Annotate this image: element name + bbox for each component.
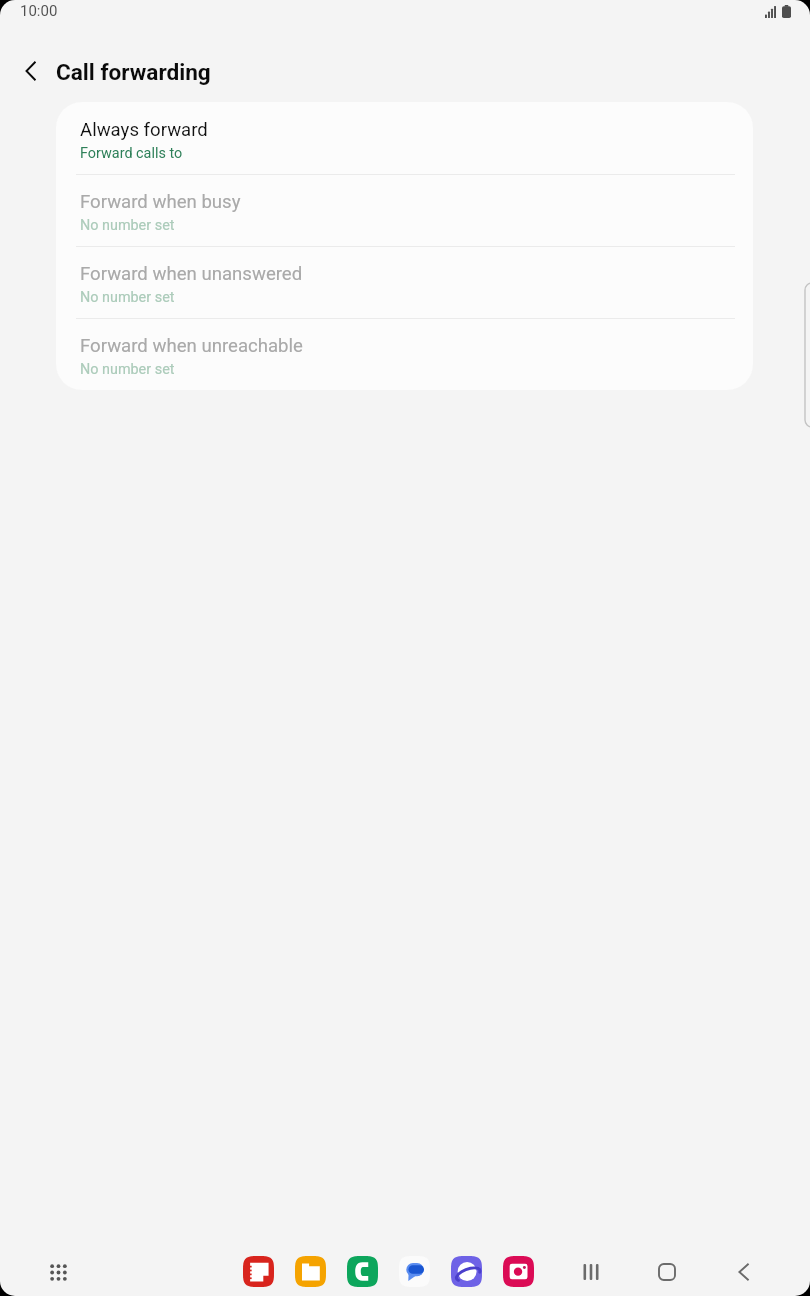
staticText: No number set bbox=[80, 217, 175, 234]
button[interactable]: Forward when unreachable bbox=[56, 318, 753, 390]
staticText: Forward calls to bbox=[80, 145, 183, 162]
button[interactable]: Samsung Notes bbox=[243, 1256, 274, 1287]
button[interactable]: Internet bbox=[451, 1256, 482, 1287]
button[interactable]: Recents bbox=[569, 1250, 613, 1294]
staticText: Forward when unanswered bbox=[80, 263, 303, 285]
button[interactable]: Apps bbox=[36, 1250, 81, 1295]
staticText: No number set bbox=[80, 289, 175, 306]
button[interactable]: Always forward bbox=[56, 102, 753, 174]
button[interactable]: Forward when busy bbox=[56, 174, 753, 246]
staticText: Always forward bbox=[80, 119, 208, 141]
button[interactable]: Home bbox=[645, 1250, 689, 1294]
staticText: 10:00 bbox=[20, 2, 58, 20]
button[interactable]: Phone bbox=[347, 1256, 378, 1287]
button[interactable]: Back bbox=[722, 1250, 766, 1294]
staticText: Forward when unreachable bbox=[80, 335, 303, 357]
staticText: Call forwarding bbox=[56, 59, 211, 85]
staticText: Forward when busy bbox=[80, 191, 241, 213]
button[interactable]: Navigate up bbox=[8, 47, 56, 95]
button[interactable]: Camera bbox=[503, 1256, 534, 1287]
staticText: No number set bbox=[80, 361, 175, 378]
button[interactable]: Forward when unanswered bbox=[56, 246, 753, 318]
button[interactable]: My Files bbox=[295, 1256, 326, 1287]
button[interactable]: Messages bbox=[399, 1256, 430, 1287]
